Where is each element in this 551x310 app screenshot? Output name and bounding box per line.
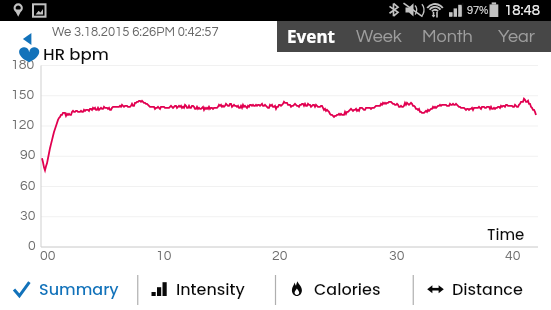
staticText: 00: [40, 249, 56, 263]
staticText: 30: [20, 209, 36, 223]
staticText: 60: [20, 179, 36, 193]
button[interactable]: Year: [482, 21, 551, 52]
staticText: Year: [498, 27, 535, 46]
staticText: Summary: [39, 278, 119, 300]
button[interactable]: Summary: [0, 268, 137, 310]
staticText: Time: [487, 224, 525, 245]
staticText: Month: [422, 27, 473, 46]
staticText: 180: [11, 58, 35, 72]
staticText: 120: [11, 118, 35, 132]
staticText: We 3.18.2015 6:26PM 0:42:57: [52, 25, 219, 38]
button[interactable]: Back: [17, 31, 41, 63]
staticText: 150: [11, 88, 35, 102]
staticText: Calories: [314, 278, 381, 300]
button[interactable]: Event: [277, 21, 345, 52]
staticText: 20: [272, 249, 288, 263]
staticText: Week: [356, 27, 402, 46]
staticText: HR bpm: [43, 43, 109, 66]
staticText: 30: [389, 249, 405, 263]
staticText: Distance: [452, 278, 523, 300]
staticText: 40: [505, 249, 521, 263]
button[interactable]: Week: [345, 21, 413, 52]
button[interactable]: Calories: [275, 268, 413, 310]
staticText: 97%: [467, 5, 489, 16]
staticText: 18:48: [504, 3, 541, 18]
staticText: Event: [287, 25, 335, 48]
staticText: 10: [156, 249, 172, 263]
button[interactable]: Distance: [413, 268, 551, 310]
staticText: 90: [20, 148, 36, 162]
staticText: Intensity: [176, 278, 245, 300]
button[interactable]: Intensity: [137, 268, 275, 310]
staticText: 0: [28, 239, 36, 253]
button[interactable]: Month: [413, 21, 482, 52]
